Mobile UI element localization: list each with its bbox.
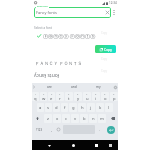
- button[interactable]: h: [78, 103, 86, 112]
- staticText: i: [95, 96, 97, 101]
- button[interactable]: 0: [110, 92, 118, 101]
- staticText: 0: [113, 93, 115, 96]
- staticText: q: [34, 96, 37, 101]
- staticText: k: [99, 105, 102, 111]
- button[interactable]: m: [98, 114, 106, 123]
- staticText: e: [50, 96, 53, 101]
- button[interactable]: 8: [92, 92, 100, 101]
- staticText: ,: [51, 127, 52, 132]
- staticText: ＦＡＮＣＹ ＦＯＮＴＳ: [35, 60, 83, 66]
- button[interactable]: More options: [111, 7, 117, 18]
- staticText: y: [77, 96, 80, 101]
- button[interactable]: and: [61, 83, 86, 91]
- button[interactable]: z: [44, 114, 52, 123]
- staticText: .: [99, 127, 100, 132]
- staticText: t: [68, 96, 70, 101]
- button[interactable]: Fancy fonts: [34, 7, 111, 18]
- button[interactable]: Emoji: [55, 125, 62, 134]
- button[interactable]: l: [105, 103, 113, 112]
- button[interactable]: Keyboard settings: [113, 85, 117, 89]
- button[interactable]: Recents: [92, 141, 101, 150]
- staticText: Copy: [101, 57, 108, 61]
- staticText: v: [74, 116, 77, 122]
- button[interactable]: ?123: [32, 125, 47, 134]
- staticText: Select a font: [34, 26, 52, 30]
- button[interactable]: k: [96, 103, 104, 112]
- button[interactable]: j: [87, 103, 95, 112]
- button[interactable]: Copy: [32, 30, 118, 56]
- staticText: 5: [68, 93, 70, 96]
- button[interactable]: my: [86, 83, 111, 91]
- staticText: 1: [35, 93, 37, 96]
- staticText: 12:34: [109, 1, 117, 5]
- button[interactable]: 7: [83, 92, 91, 101]
- staticText: w: [42, 96, 46, 101]
- button[interactable]: f: [61, 103, 68, 112]
- button[interactable]: v: [71, 114, 79, 123]
- staticText: my: [96, 85, 101, 89]
- staticText: h: [81, 105, 84, 111]
- button[interactable]: b: [80, 114, 88, 123]
- button[interactable]: are: [37, 83, 61, 91]
- staticText: 3: [51, 93, 53, 96]
- staticText: Enter text: [37, 5, 48, 8]
- button[interactable]: a: [37, 103, 44, 112]
- button[interactable]: ,: [48, 125, 54, 134]
- button[interactable]: Home: [69, 141, 78, 150]
- staticText: n: [92, 116, 95, 122]
- button[interactable]: 1: [32, 92, 39, 101]
- staticText: Copy: [101, 69, 108, 73]
- button[interactable]: 6: [74, 92, 82, 101]
- staticText: ʎɔuɐɟ sʇuoɟ: [34, 72, 60, 79]
- button[interactable]: Shift: [32, 114, 43, 123]
- button[interactable]: Copy: [32, 56, 118, 68]
- staticText: Copy: [104, 47, 112, 52]
- staticText: r: [59, 96, 61, 101]
- button[interactable]: Backspace: [107, 114, 118, 123]
- button[interactable]: Back: [45, 141, 54, 150]
- button[interactable]: x: [53, 114, 61, 123]
- staticText: g: [72, 105, 75, 111]
- button[interactable]: Switch keyboard: [106, 141, 115, 150]
- button[interactable]: d: [53, 103, 60, 112]
- staticText: u: [86, 96, 89, 101]
- button[interactable]: 2: [40, 92, 47, 101]
- staticText: 2: [43, 93, 45, 96]
- button[interactable]: s: [45, 103, 52, 112]
- button[interactable]: Copy: [95, 45, 116, 53]
- staticText: 8: [95, 93, 97, 96]
- button[interactable]: n: [89, 114, 97, 123]
- staticText: o: [104, 96, 107, 101]
- staticText: are: [47, 85, 52, 89]
- staticText: Fancy fonts: [36, 10, 57, 15]
- staticText: a: [39, 105, 42, 111]
- staticText: x: [56, 116, 59, 122]
- staticText: f: [64, 105, 66, 111]
- staticText: 6: [77, 93, 79, 96]
- staticText: d: [55, 105, 58, 111]
- staticText: j: [90, 105, 92, 111]
- staticText: l: [108, 105, 110, 111]
- button[interactable]: 5: [65, 92, 73, 101]
- staticText: Copy: [101, 31, 108, 35]
- staticText: 7: [86, 93, 88, 96]
- staticText: p: [113, 96, 116, 101]
- button[interactable]: g: [69, 103, 77, 112]
- staticText: Ⓕⓐⓝⓒⓨ Ⓕⓞⓝⓣⓢ: [43, 33, 96, 40]
- button[interactable]: 9: [101, 92, 109, 101]
- staticText: and: [71, 85, 77, 89]
- staticText: 4: [59, 93, 61, 96]
- staticText: b: [83, 116, 86, 122]
- button[interactable]: Enter: [104, 125, 118, 134]
- button[interactable]: 3: [48, 92, 55, 101]
- staticText: 9: [104, 93, 106, 96]
- button[interactable]: Clear: [105, 10, 110, 15]
- staticText: ?123: [36, 128, 43, 132]
- staticText: m: [100, 116, 104, 122]
- button[interactable]: Copy: [32, 68, 118, 80]
- staticText: z: [47, 116, 49, 122]
- button[interactable]: 4: [56, 92, 64, 101]
- button[interactable]: c: [62, 114, 70, 123]
